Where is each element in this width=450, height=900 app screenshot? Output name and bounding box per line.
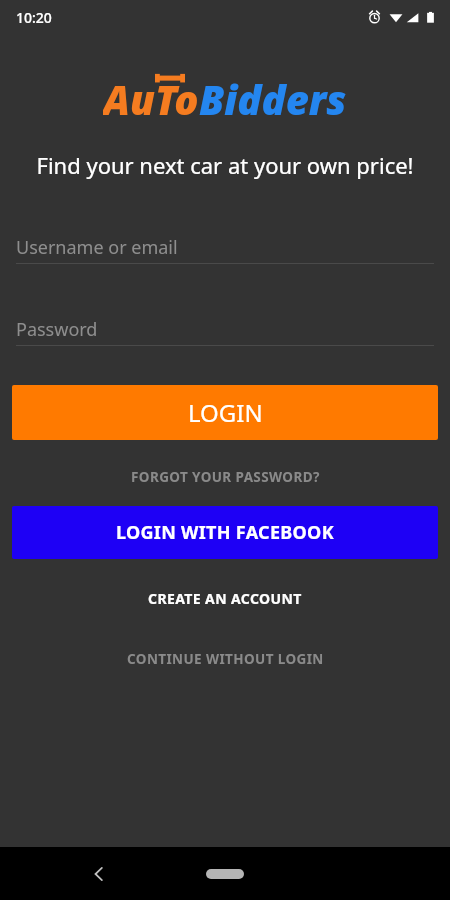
button[interactable]: Username or email (16, 232, 434, 264)
staticText: CREATE AN ACCOUNT (148, 589, 302, 608)
staticText: LOGIN (188, 396, 263, 429)
button[interactable]: AuTo (85, 72, 365, 124)
staticText: Find your next car at your own price! (26, 150, 424, 180)
button[interactable]: LOGIN WITH FACEBOOK (12, 506, 438, 559)
button[interactable]: LOGIN (12, 385, 438, 440)
staticText: 10:20 (16, 8, 52, 27)
staticText: LOGIN WITH FACEBOOK (116, 520, 334, 545)
button[interactable]: FORGOT YOUR PASSWORD? (0, 460, 450, 494)
staticText: Username or email (16, 235, 178, 260)
staticText: AuTo (103, 72, 199, 124)
button[interactable]: CREATE AN ACCOUNT (0, 581, 450, 615)
staticText: Password (16, 317, 98, 342)
button[interactable]: CONTINUE WITHOUT LOGIN (0, 642, 450, 676)
button[interactable]: Back (82, 857, 116, 891)
button[interactable]: Home (197, 857, 253, 891)
staticText: CONTINUE WITHOUT LOGIN (127, 650, 324, 668)
staticText: Bidders (199, 72, 347, 124)
button[interactable]: Password (16, 314, 434, 346)
staticText: FORGOT YOUR PASSWORD? (131, 468, 320, 486)
